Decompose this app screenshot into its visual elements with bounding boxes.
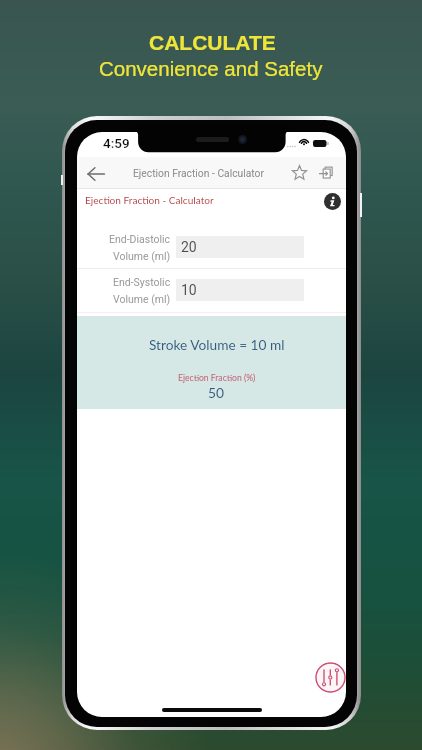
button[interactable]: 10 — [176, 279, 304, 301]
button[interactable]: Information — [324, 193, 341, 210]
staticText: Stroke Volume = 10 ml — [149, 336, 285, 352]
staticText: 20 — [181, 239, 197, 255]
staticText: 4:59 — [103, 135, 130, 151]
button[interactable]: Favorite — [286, 159, 313, 186]
button[interactable]: 20 — [176, 236, 304, 258]
button[interactable]: Open in new window — [312, 159, 339, 186]
staticText: Volume (ml) — [113, 293, 171, 305]
staticText: Volume (ml) — [113, 250, 171, 262]
staticText: CALCULATE — [149, 31, 276, 54]
staticText: End-Systolic — [113, 276, 171, 288]
staticText: Ejection Fraction (%) — [178, 373, 256, 383]
button[interactable]: Adjust calculator settings — [315, 662, 346, 693]
staticText: Ejection Fraction - Calculator — [85, 194, 214, 206]
button[interactable]: Back — [81, 159, 111, 189]
staticText: End-Diastolic — [109, 233, 171, 245]
staticText: Ejection Fraction - Calculator — [133, 167, 264, 179]
staticText: 10 — [181, 282, 197, 298]
staticText: 50 — [208, 384, 225, 401]
staticText: Convenience and Safety — [99, 57, 323, 80]
